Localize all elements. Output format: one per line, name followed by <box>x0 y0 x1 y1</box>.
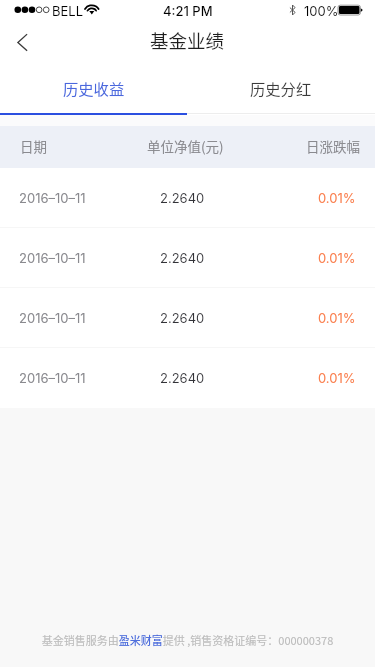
staticText: 0.01% <box>318 370 356 386</box>
button[interactable]: 历史分红 <box>187 64 375 112</box>
button[interactable]: 2016–10–11 <box>0 168 375 227</box>
staticText: BELL <box>52 3 84 19</box>
staticText: 2.2640 <box>160 190 205 206</box>
button[interactable]: Back <box>0 20 44 64</box>
staticText: 2.2640 <box>160 370 205 386</box>
staticText: 历史收益 <box>63 77 125 99</box>
button[interactable]: 2016–10–11 <box>0 288 375 347</box>
staticText: 日涨跌幅 <box>306 136 360 156</box>
button[interactable]: 2016–10–11 <box>0 228 375 287</box>
staticText: 基金业绩 <box>150 27 225 54</box>
button[interactable]: 基金销售服务由盈米财富提供 ,销售资格证编号：000000378 <box>0 632 375 648</box>
staticText: 2016–10–11 <box>19 190 86 206</box>
staticText: 100% <box>304 3 339 19</box>
staticText: 基金销售服务由盈米财富提供 ,销售资格证编号：000000378 <box>0 632 375 648</box>
staticText: 2.2640 <box>160 250 205 266</box>
staticText: 2016–10–11 <box>19 250 86 266</box>
staticText: 0.01% <box>318 190 356 206</box>
staticText: 0.01% <box>318 310 356 326</box>
button[interactable]: 历史收益 <box>0 64 187 112</box>
staticText: 2.2640 <box>160 310 205 326</box>
staticText: 4:21 PM <box>163 3 213 19</box>
staticText: 2016–10–11 <box>19 370 86 386</box>
button[interactable]: 2016–10–11 <box>0 348 375 408</box>
staticText: 0.01% <box>318 250 356 266</box>
staticText: 单位净值(元) <box>147 136 224 156</box>
staticText: 日期 <box>20 136 47 156</box>
staticText: 历史分红 <box>250 77 312 99</box>
staticText: 2016–10–11 <box>19 310 86 326</box>
